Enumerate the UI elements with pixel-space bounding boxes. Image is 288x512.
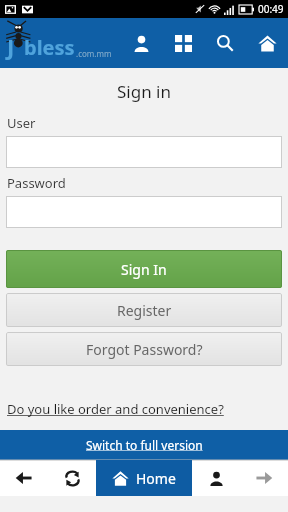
button[interactable]: Home (254, 30, 280, 56)
button[interactable] (6, 196, 282, 228)
button[interactable]: Categories (170, 30, 196, 56)
button[interactable]: Profile (128, 30, 154, 56)
button[interactable]: Forward (240, 460, 288, 496)
button[interactable]: Back (0, 460, 48, 496)
staticText: Do you like order and convenience? (7, 400, 224, 418)
staticText: Home (136, 469, 176, 488)
staticText: 00:49 (258, 2, 284, 16)
staticText: User (7, 114, 36, 132)
staticText: Register (117, 301, 172, 320)
staticText: J (7, 31, 15, 61)
staticText: Switch to full version (86, 437, 203, 453)
staticText: .com.mm (76, 48, 112, 59)
button[interactable]: Switch to full version (0, 430, 288, 460)
button[interactable]: Refresh (48, 460, 96, 496)
button[interactable]: Do you like order and convenience? (0, 398, 288, 420)
staticText: bless (24, 34, 75, 61)
button[interactable]: Home (96, 460, 192, 496)
staticText: Forgot Password? (86, 340, 203, 359)
staticText: Password (7, 174, 66, 192)
button[interactable] (6, 136, 282, 168)
staticText: Sign in (0, 80, 288, 103)
button[interactable]: Search (212, 30, 238, 56)
button[interactable]: Forgot Password? (6, 332, 282, 366)
staticText: Sign In (121, 260, 167, 279)
button[interactable]: Account (192, 460, 240, 496)
button[interactable]: Register (6, 293, 282, 327)
button[interactable]: Sign In (6, 250, 282, 288)
button[interactable]: Jobless.com.mm home (4, 20, 114, 66)
